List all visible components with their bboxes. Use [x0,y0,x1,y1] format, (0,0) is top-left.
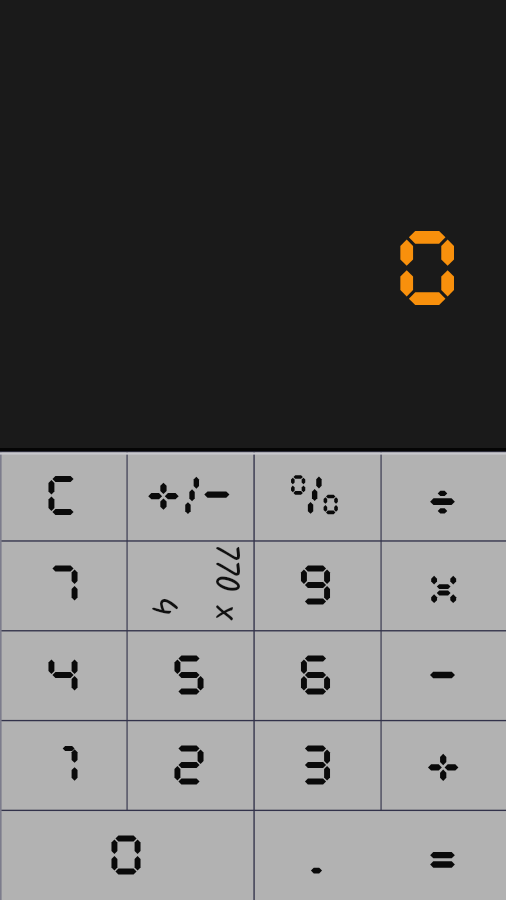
button[interactable]: Multiply [379,540,506,630]
button[interactable]: Divide [379,451,506,540]
button[interactable]: Nine [252,540,379,630]
button[interactable]: Decimal point [252,810,379,900]
button[interactable]: Equals [379,810,506,900]
button[interactable]: Percent [252,451,379,540]
button[interactable]: One [0,720,126,810]
button[interactable]: Two [126,720,252,810]
button[interactable]: Seven [0,540,126,630]
button[interactable]: Zero [0,810,252,900]
button[interactable]: Minus [379,630,506,720]
staticText: 770 x [196,543,250,620]
button[interactable]: Clear [0,451,126,540]
button[interactable]: Six [252,630,379,720]
button[interactable]: Eight [126,540,252,630]
button[interactable]: Plus minus [126,451,252,540]
staticText: 4 [134,596,188,615]
button[interactable]: Three [252,720,379,810]
button[interactable]: Four [0,630,126,720]
button[interactable]: Plus [379,720,506,810]
button[interactable]: Five [126,630,252,720]
